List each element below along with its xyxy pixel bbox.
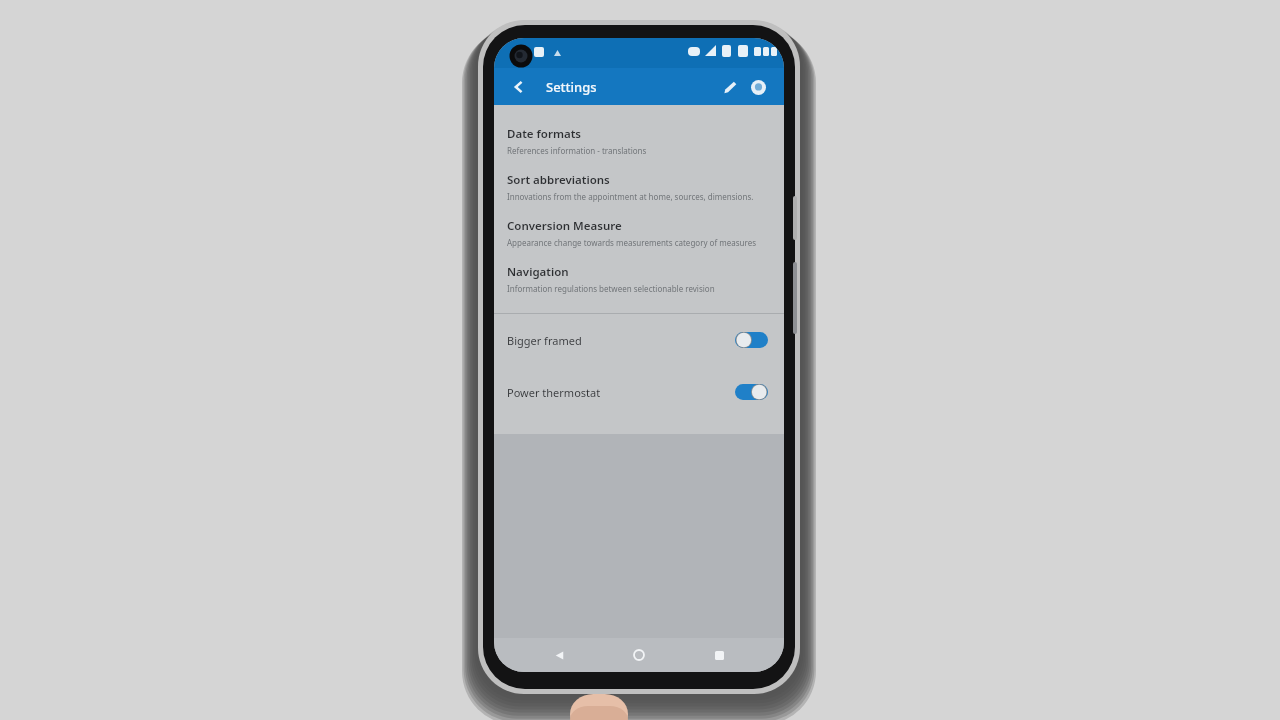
button[interactable]: Back <box>544 640 574 670</box>
staticText: Power thermostat <box>507 385 601 400</box>
staticText: Conversion Measure <box>507 218 622 234</box>
button[interactable]: Account <box>744 73 772 101</box>
staticText: Settings <box>546 78 597 96</box>
staticText: Appearance change towards measurements c… <box>507 237 757 248</box>
staticText: References information - translations <box>507 145 647 156</box>
button[interactable]: Off <box>735 331 768 349</box>
staticText: Sort abbreviations <box>507 172 610 188</box>
staticText: Innovations from the appointment at home… <box>507 191 754 202</box>
button[interactable]: Home <box>624 640 654 670</box>
button[interactable]: Back <box>506 74 532 100</box>
button[interactable]: Sort abbreviations <box>494 165 784 211</box>
button[interactable]: Navigation <box>494 257 784 303</box>
button[interactable]: Recent apps <box>704 640 734 670</box>
staticText: Information regulations between selectio… <box>507 283 715 294</box>
button[interactable]: Bigger framed <box>494 314 784 366</box>
staticText: Navigation <box>507 264 569 280</box>
button[interactable]: Conversion Measure <box>494 211 784 257</box>
button[interactable]: Power thermostat <box>494 366 784 418</box>
staticText: Date formats <box>507 126 581 142</box>
button[interactable]: Edit <box>716 73 744 101</box>
staticText: Bigger framed <box>507 333 582 348</box>
button[interactable]: On <box>735 383 768 401</box>
button[interactable]: Date formats <box>494 119 784 165</box>
